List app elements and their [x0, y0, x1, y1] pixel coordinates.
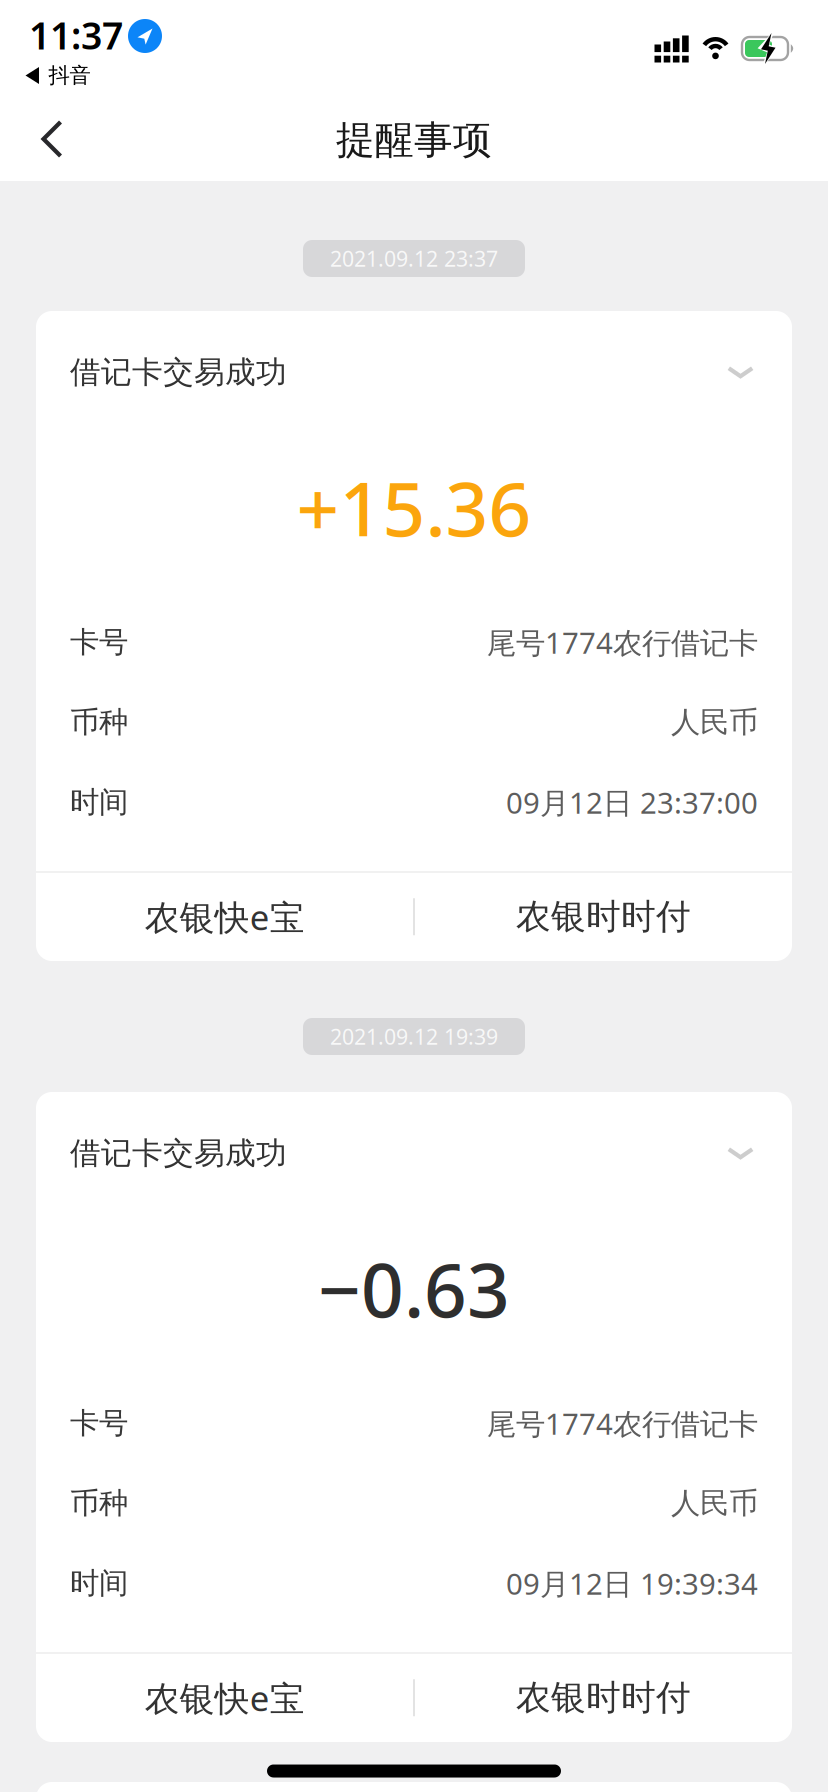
staticText: 借记卡交易成功 — [70, 353, 287, 391]
staticText: 提醒事项 — [336, 116, 492, 164]
staticText: 币种 — [70, 1485, 128, 1521]
staticText: 农银快e宝 — [145, 894, 305, 940]
staticText: 时间 — [70, 1565, 128, 1601]
staticText: 11:37 — [29, 10, 123, 60]
staticText: 时间 — [70, 784, 128, 820]
staticText: 09月12日 19:39:34 — [506, 1564, 758, 1603]
button[interactable]: 返回 — [21, 104, 83, 174]
staticText: 2021.09.12 23:37 — [330, 244, 498, 273]
button[interactable]: 农银快e宝 — [36, 1654, 413, 1742]
staticText: 卡号 — [70, 1405, 128, 1441]
staticText: 抖音 — [48, 62, 90, 89]
staticText: +15.36 — [296, 458, 531, 557]
staticText: 卡号 — [70, 624, 128, 660]
staticText: 农银时时付 — [516, 1676, 691, 1719]
button[interactable]: 返回抖音 — [25, 62, 90, 89]
button[interactable]: 借记卡交易成功，展开详情 — [36, 348, 792, 396]
staticText: 农银快e宝 — [145, 1675, 305, 1721]
staticText: 人民币 — [671, 1485, 758, 1521]
button[interactable]: 农银快e宝 — [36, 873, 413, 961]
staticText: 09月12日 23:37:00 — [506, 783, 758, 822]
button[interactable]: 农银时时付 — [415, 1654, 792, 1742]
button[interactable]: 借记卡交易成功，展开详情 — [36, 1129, 792, 1177]
button[interactable]: 农银时时付 — [415, 873, 792, 961]
staticText: −0.63 — [318, 1239, 510, 1338]
staticText: 人民币 — [671, 704, 758, 740]
staticText: 借记卡交易成功 — [70, 1134, 287, 1172]
staticText: 2021.09.12 19:39 — [330, 1022, 498, 1051]
staticText: 币种 — [70, 704, 128, 740]
staticText: 农银时时付 — [516, 895, 691, 938]
staticText: 尾号1774农行借记卡 — [487, 1404, 758, 1443]
staticText: 尾号1774农行借记卡 — [487, 623, 758, 662]
